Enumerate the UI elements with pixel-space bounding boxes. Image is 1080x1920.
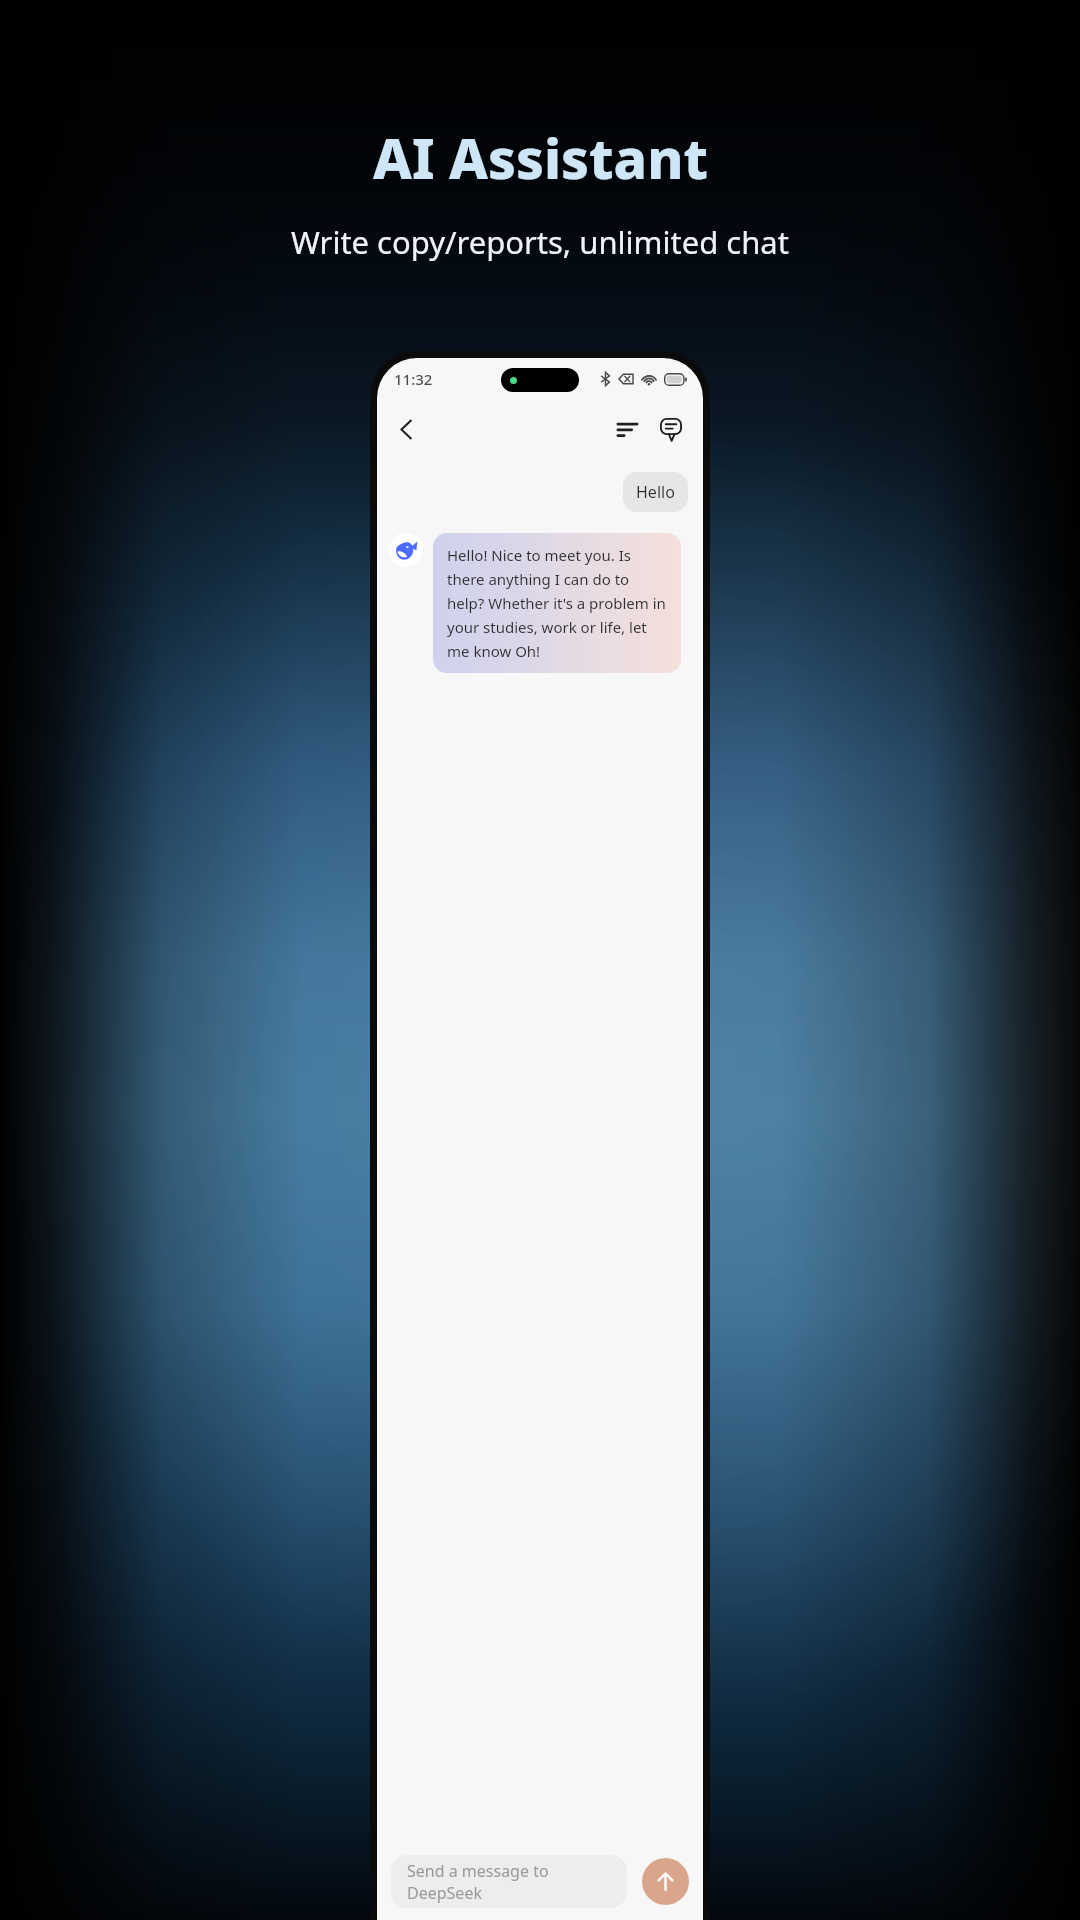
staticText: 11:32 [394,369,433,389]
button[interactable]: Send [642,1858,689,1905]
button[interactable]: Chat history [605,407,649,451]
staticText: Send a message to DeepSeek [407,1860,611,1904]
staticText: Hello [636,481,675,503]
button[interactable]: Send a message to DeepSeek [391,1855,627,1908]
button[interactable]: New chat [649,407,693,451]
other: DeepSeek assistant [389,533,423,567]
button[interactable]: Back [384,407,428,451]
staticText: Write copy/reports, unlimited chat [291,221,789,263]
button[interactable]: Hello! Nice to meet you. Is there anythi… [433,533,681,673]
button[interactable]: Hello [623,472,688,512]
staticText: Hello! Nice to meet you. Is there anythi… [447,545,667,661]
staticText: AI Assistant [373,120,708,195]
